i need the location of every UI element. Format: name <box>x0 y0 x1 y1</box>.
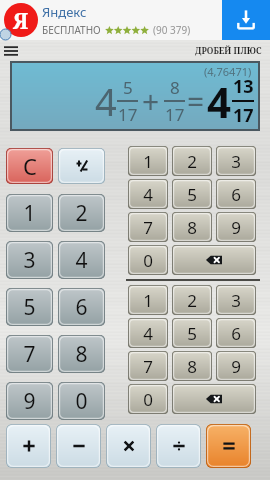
staticText: 5 <box>123 76 133 99</box>
button[interactable]: Menu <box>3 43 19 59</box>
button[interactable]: Backspace denominator <box>172 384 256 414</box>
button[interactable]: Multiply <box>106 424 151 468</box>
button[interactable]: 3 <box>216 146 256 176</box>
button[interactable]: Divide <box>156 424 201 468</box>
staticText: 4 <box>75 246 88 275</box>
staticText: 2 <box>187 150 197 173</box>
button[interactable]: 8 <box>58 335 105 373</box>
button[interactable]: 4 <box>128 318 168 348</box>
staticText: 2 <box>75 199 88 228</box>
button[interactable]: (4,76471) <box>12 63 258 129</box>
staticText: 0 <box>75 387 88 416</box>
button[interactable]: 2 <box>58 194 105 232</box>
button[interactable]: Equals <box>206 424 251 468</box>
staticText: 9 <box>23 387 36 416</box>
staticText: ДРОБЕЙ ПЛЮС <box>195 45 262 57</box>
staticText: 8 <box>187 355 197 378</box>
staticText: 17 <box>118 103 138 126</box>
button[interactable]: 4 <box>128 179 168 209</box>
button[interactable]: 9 <box>216 212 256 242</box>
button[interactable]: 4 <box>58 241 105 279</box>
staticText: 7 <box>143 355 153 378</box>
button[interactable]: 1 <box>128 285 168 315</box>
staticText: 9 <box>231 355 241 378</box>
button[interactable]: 3 <box>216 285 256 315</box>
button[interactable]: 2 <box>172 146 212 176</box>
staticText: 4 <box>207 73 232 129</box>
button[interactable]: Plus <box>6 424 51 468</box>
staticText: C <box>23 151 37 181</box>
staticText: = <box>187 81 205 122</box>
staticText: 9 <box>231 216 241 239</box>
staticText: 7 <box>143 216 153 239</box>
staticText: + <box>142 81 160 122</box>
button[interactable]: 7 <box>128 351 168 381</box>
staticText: 1 <box>23 199 36 228</box>
staticText: 7 <box>23 340 36 369</box>
staticText: 6 <box>231 322 241 345</box>
button[interactable]: 1 <box>128 146 168 176</box>
staticText: 8 <box>187 216 197 239</box>
button[interactable]: Install <box>222 0 270 40</box>
staticText: 17 <box>165 103 185 126</box>
button[interactable]: 5 <box>6 288 53 326</box>
staticText: 13 <box>233 74 254 99</box>
staticText: 2 <box>187 289 197 312</box>
button[interactable]: 0 <box>128 245 168 275</box>
button[interactable]: 8 <box>172 351 212 381</box>
staticText: 4 <box>95 75 117 127</box>
staticText: 5 <box>187 322 197 345</box>
staticText: 0 <box>143 388 153 411</box>
button[interactable]: Backspace numerator <box>172 245 256 275</box>
button[interactable]: 1 <box>6 194 53 232</box>
staticText: 8 <box>170 76 180 99</box>
button[interactable]: 5 <box>172 179 212 209</box>
button[interactable]: Plus minus <box>58 148 105 184</box>
staticText: Яндекс <box>42 3 87 21</box>
staticText: 6 <box>75 293 88 322</box>
staticText: 5 <box>187 183 197 206</box>
button[interactable]: 8 <box>172 212 212 242</box>
staticText: 8 <box>75 340 88 369</box>
button[interactable]: 2 <box>172 285 212 315</box>
button[interactable]: 7 <box>6 335 53 373</box>
staticText: 4 <box>143 183 153 206</box>
button[interactable]: 6 <box>216 179 256 209</box>
staticText: (4,76471) <box>204 64 252 79</box>
button[interactable]: Minus <box>56 424 101 468</box>
staticText: БЕСПЛАТНО <box>42 23 101 37</box>
staticText: 17 <box>233 103 254 128</box>
staticText: Я <box>13 5 29 35</box>
button[interactable]: 3 <box>6 241 53 279</box>
staticText: 3 <box>231 150 241 173</box>
button[interactable]: C <box>6 148 53 184</box>
staticText: 4 <box>143 322 153 345</box>
button[interactable]: 9 <box>6 382 53 420</box>
staticText: 1 <box>143 289 153 312</box>
staticText: 3 <box>23 246 36 275</box>
staticText: (90 379) <box>153 23 191 37</box>
staticText: 1 <box>143 150 153 173</box>
button[interactable]: 6 <box>216 318 256 348</box>
staticText: 5 <box>23 293 36 322</box>
staticText: 6 <box>231 183 241 206</box>
button[interactable]: 6 <box>58 288 105 326</box>
staticText: 3 <box>231 289 241 312</box>
button[interactable]: 5 <box>172 318 212 348</box>
button[interactable]: 0 <box>58 382 105 420</box>
button[interactable]: 9 <box>216 351 256 381</box>
button[interactable]: 0 <box>128 384 168 414</box>
staticText: 0 <box>143 249 153 272</box>
button[interactable]: 7 <box>128 212 168 242</box>
